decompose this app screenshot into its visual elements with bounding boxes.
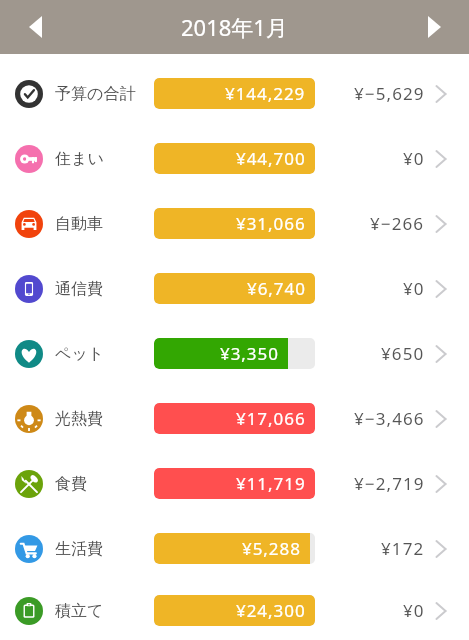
button[interactable]: 通信費 (0, 256, 469, 321)
staticText: ¥650 (381, 342, 425, 365)
staticText: ¥6,740 (247, 277, 306, 300)
staticText: 食費 (55, 474, 87, 494)
staticText: 通信費 (55, 279, 103, 299)
staticText: ¥172 (381, 537, 425, 560)
staticText: 予算の合計 (55, 84, 136, 104)
button[interactable]: Previous month (0, 0, 70, 54)
staticText: ¥5,288 (242, 537, 301, 560)
staticText: ¥0 (403, 599, 425, 622)
button[interactable]: 生活費 (0, 516, 469, 581)
staticText: ¥0 (403, 147, 425, 170)
button[interactable]: 住まい (0, 126, 469, 191)
staticText: ¥24,300 (236, 599, 306, 622)
staticText: 住まい (55, 149, 104, 169)
staticText: 光熱費 (55, 409, 103, 429)
staticText: ¥−2,719 (354, 472, 425, 495)
staticText: 積立て (55, 601, 104, 621)
button[interactable]: 光熱費 (0, 386, 469, 451)
button[interactable]: Next month (399, 0, 469, 54)
button[interactable]: 積立て (0, 581, 469, 640)
staticText: ¥0 (403, 277, 425, 300)
button[interactable]: 食費 (0, 451, 469, 516)
staticText: ペット (55, 344, 105, 364)
staticText: ¥144,229 (225, 82, 306, 105)
staticText: ¥31,066 (236, 212, 306, 235)
staticText: ¥−3,466 (354, 407, 425, 430)
staticText: ¥11,719 (236, 472, 306, 495)
staticText: ¥3,350 (220, 342, 279, 365)
staticText: 生活費 (55, 539, 103, 559)
staticText: ¥17,066 (236, 407, 306, 430)
button[interactable]: 予算の合計 (0, 61, 469, 126)
staticText: 2018年1月 (181, 12, 288, 42)
button[interactable]: 自動車 (0, 191, 469, 256)
staticText: ¥−266 (370, 212, 425, 235)
staticText: 自動車 (55, 214, 103, 234)
staticText: ¥44,700 (236, 147, 306, 170)
button[interactable]: ペット (0, 321, 469, 386)
staticText: ¥−5,629 (354, 82, 425, 105)
